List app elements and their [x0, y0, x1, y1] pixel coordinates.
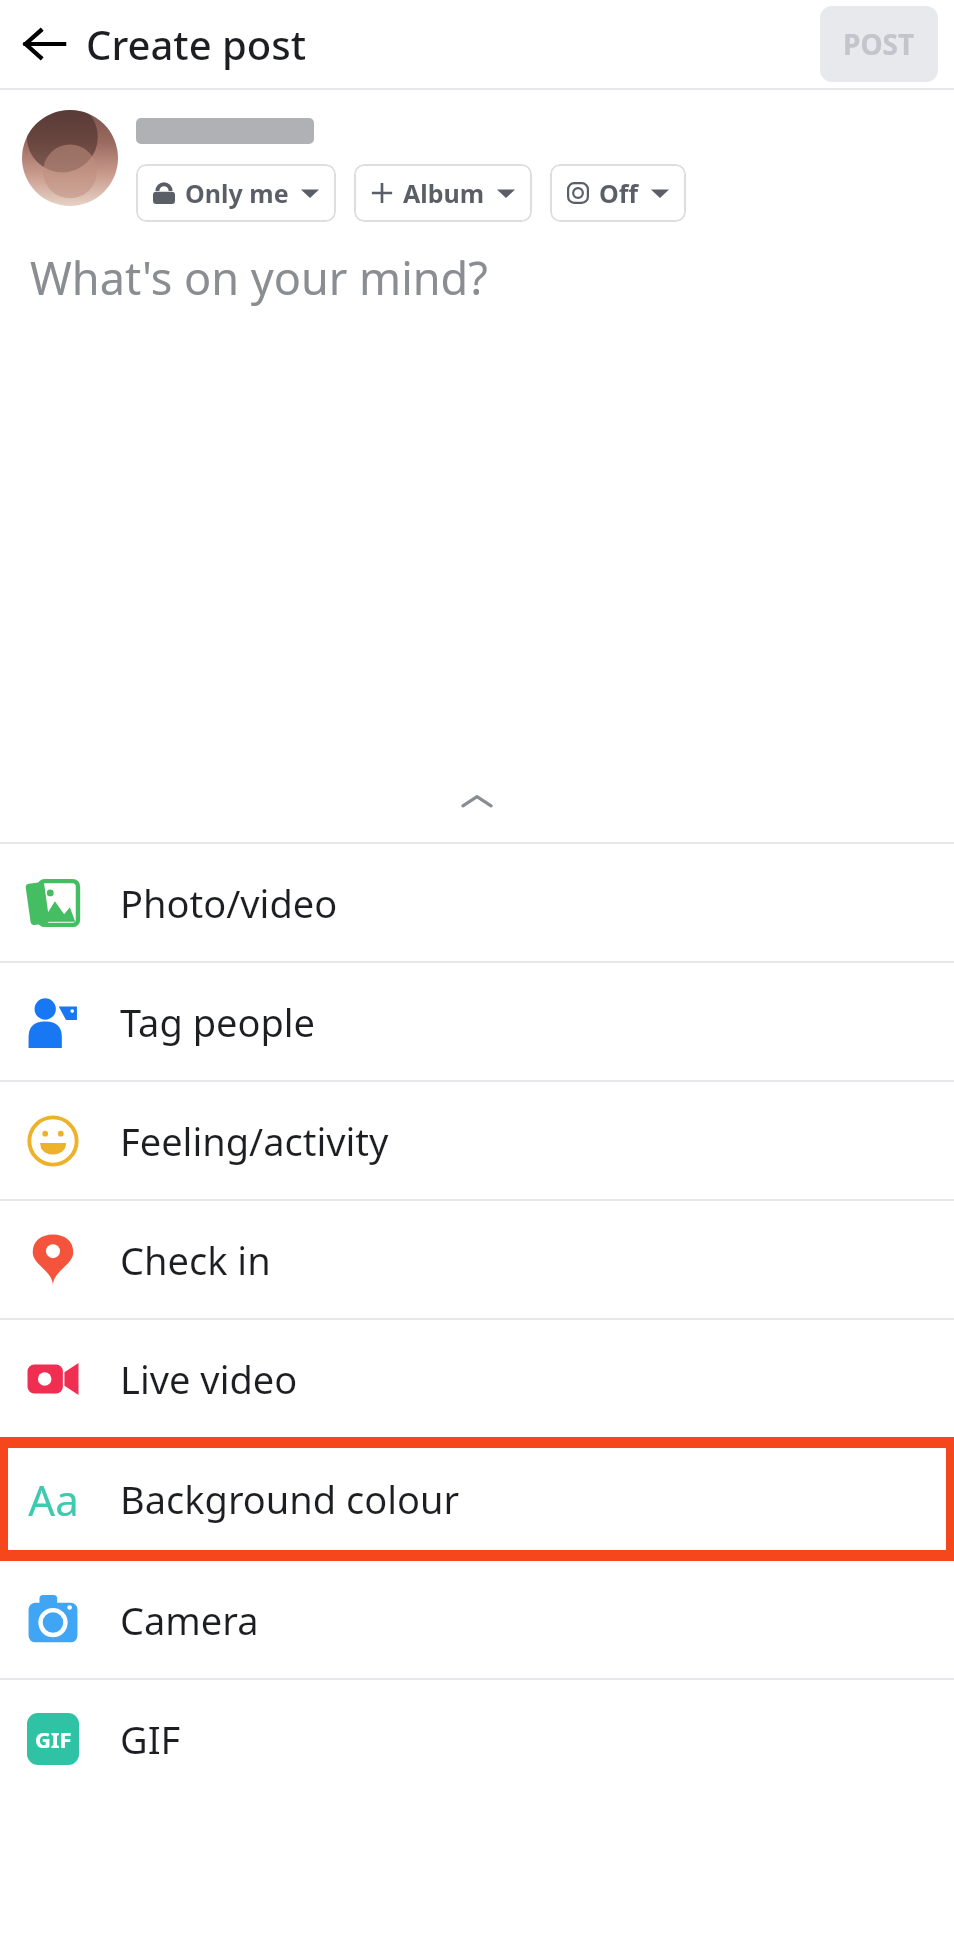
staticText: Live video [120, 1353, 298, 1405]
button[interactable]: Live video [0, 1320, 954, 1437]
button[interactable]: Back [10, 10, 78, 78]
staticText: Create post [86, 17, 307, 71]
button[interactable]: Only me [136, 164, 336, 222]
staticText: Only me [185, 176, 289, 210]
button[interactable]: Photo/video [0, 844, 954, 961]
staticText: Background colour [120, 1473, 460, 1525]
button[interactable]: Album [354, 164, 532, 222]
button[interactable]: Profile photo [22, 110, 118, 206]
button[interactable]: GIF [0, 1680, 954, 1797]
button[interactable]: Feeling/activity [0, 1082, 954, 1199]
staticText: Off [599, 176, 639, 210]
button[interactable]: Check in [0, 1201, 954, 1318]
button[interactable]: Tag people [0, 963, 954, 1080]
button[interactable]: Aa [8, 1448, 946, 1550]
button[interactable]: Camera [0, 1561, 954, 1678]
button[interactable]: POST [820, 6, 938, 82]
staticText: Aa [28, 1471, 79, 1528]
staticText: POST [843, 25, 915, 63]
staticText: Tag people [120, 996, 316, 1048]
staticText: Check in [120, 1234, 271, 1286]
staticText: Photo/video [120, 877, 338, 929]
button[interactable]: Off [550, 164, 686, 222]
staticText: GIF [120, 1713, 181, 1765]
staticText: Camera [120, 1594, 259, 1646]
staticText: What's on your mind? [30, 247, 488, 308]
staticText: GIF [35, 1724, 72, 1754]
staticText: Album [403, 176, 485, 210]
staticText: Feeling/activity [120, 1115, 389, 1167]
button[interactable]: Collapse [441, 766, 513, 838]
